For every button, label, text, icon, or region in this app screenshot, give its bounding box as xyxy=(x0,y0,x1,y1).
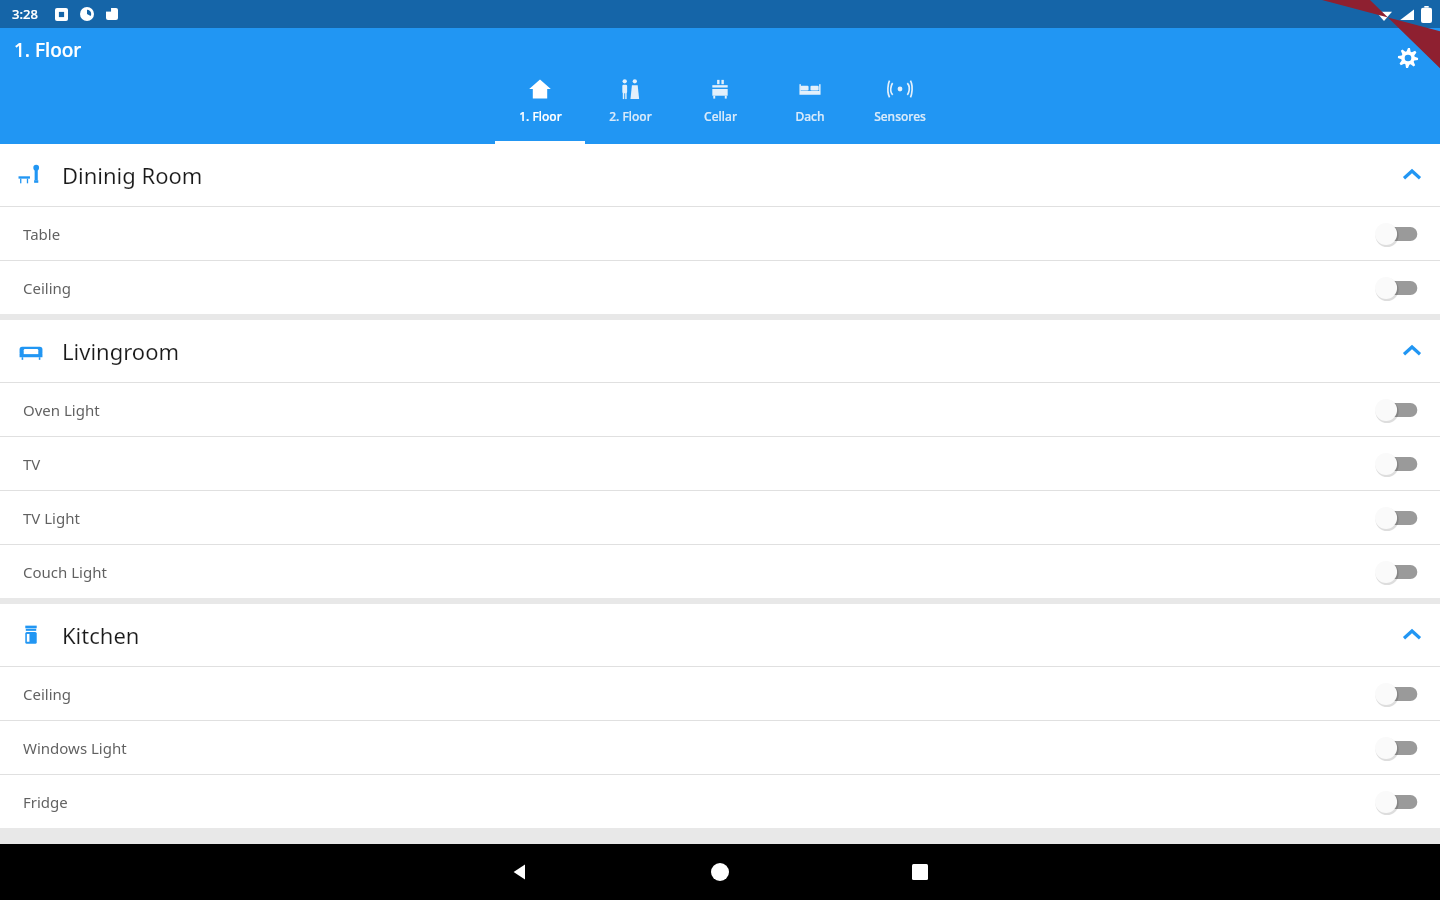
other: Collapse Dininig Room xyxy=(1384,144,1440,206)
other: Collapse Livingroom xyxy=(1384,320,1440,382)
staticText: TV xyxy=(23,454,41,474)
staticText: Kitchen xyxy=(62,620,140,650)
button[interactable]: Home xyxy=(620,844,820,900)
staticText: Oven Light xyxy=(23,400,100,420)
button[interactable]: Toggle Fridge xyxy=(1356,775,1440,828)
button[interactable]: Toggle TV xyxy=(1356,437,1440,490)
button[interactable]: Table xyxy=(0,207,1440,260)
staticText: Table xyxy=(23,224,61,244)
button[interactable]: Toggle Ceiling xyxy=(1356,667,1440,720)
button[interactable]: Toggle Table xyxy=(1356,207,1440,260)
button[interactable]: Dininig Room xyxy=(0,144,1440,206)
staticText: 2. Floor xyxy=(609,108,652,124)
button[interactable]: Back xyxy=(420,844,620,900)
staticText: 3:28 xyxy=(12,5,38,23)
button[interactable]: Toggle Couch Light xyxy=(1356,545,1440,598)
button[interactable]: Oven Light xyxy=(0,383,1440,436)
staticText: 1. Floor xyxy=(14,37,82,63)
button[interactable]: Windows Light xyxy=(0,721,1440,774)
staticText: Windows Light xyxy=(23,738,127,758)
staticText: Fridge xyxy=(23,792,68,812)
button[interactable]: Settings xyxy=(1386,36,1430,80)
staticText: Sensores xyxy=(874,108,926,124)
staticText: Ceiling xyxy=(23,684,72,704)
button[interactable]: Toggle Ceiling xyxy=(1356,261,1440,314)
button[interactable]: Toggle TV Light xyxy=(1356,491,1440,544)
button[interactable]: Ceiling xyxy=(0,667,1440,720)
button[interactable]: Fridge xyxy=(0,775,1440,828)
button[interactable]: Cellar xyxy=(675,68,765,144)
button[interactable]: 1. Floor xyxy=(495,68,585,144)
button[interactable]: Ceiling xyxy=(0,261,1440,314)
staticText: 1. Floor xyxy=(519,108,562,124)
button[interactable]: Couch Light xyxy=(0,545,1440,598)
button[interactable]: Dach xyxy=(765,68,855,144)
button[interactable]: Toggle Oven Light xyxy=(1356,383,1440,436)
staticText: Cellar xyxy=(704,108,737,124)
staticText: Ceiling xyxy=(23,278,72,298)
button[interactable]: Kitchen xyxy=(0,604,1440,666)
button[interactable]: Livingroom xyxy=(0,320,1440,382)
staticText: Couch Light xyxy=(23,562,107,582)
button[interactable]: 2. Floor xyxy=(585,68,675,144)
staticText: Dininig Room xyxy=(62,160,203,190)
staticText: TV Light xyxy=(23,508,80,528)
button[interactable]: Toggle Windows Light xyxy=(1356,721,1440,774)
button[interactable]: TV xyxy=(0,437,1440,490)
button[interactable]: Sensores xyxy=(855,68,945,144)
button[interactable]: Recents xyxy=(820,844,1020,900)
staticText: Livingroom xyxy=(62,336,180,366)
other: Collapse Kitchen xyxy=(1384,604,1440,666)
button[interactable]: TV Light xyxy=(0,491,1440,544)
staticText: Dach xyxy=(795,108,825,124)
